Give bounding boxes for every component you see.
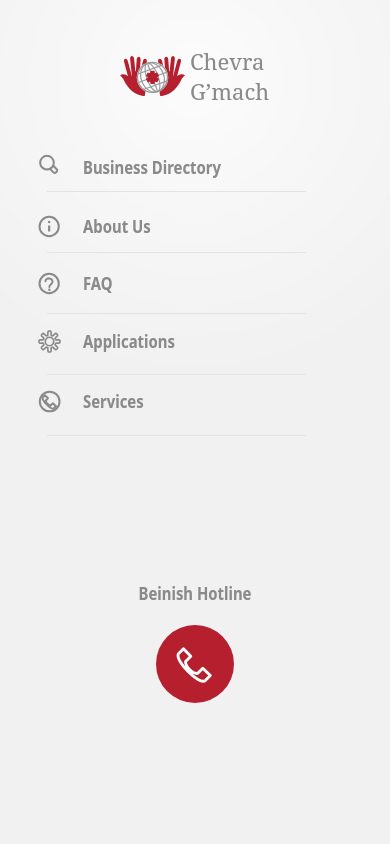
staticText: Services <box>83 390 144 413</box>
staticText: Applications <box>83 330 176 353</box>
button[interactable]: FAQ <box>0 253 390 314</box>
staticText: About Us <box>83 215 151 238</box>
button[interactable]: About Us <box>0 192 390 253</box>
staticText: Chevra <box>190 46 265 76</box>
staticText: FAQ <box>83 272 113 295</box>
button[interactable]: Business Directory <box>0 131 390 192</box>
staticText: G’mach <box>190 76 270 106</box>
button[interactable]: Services <box>0 375 390 436</box>
button[interactable]: Call Beinish Hotline <box>156 625 234 703</box>
staticText: Business Directory <box>83 156 221 179</box>
staticText: Beinish Hotline <box>138 582 252 605</box>
button[interactable]: Applications <box>0 314 390 375</box>
